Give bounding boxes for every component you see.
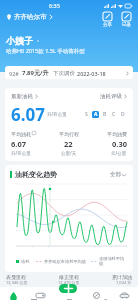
staticText: 油耗评级: [100, 93, 122, 100]
staticText: 油耗变化趋势: [15, 170, 57, 179]
staticText: 哈弗H6 2015款 1.5L 手动菁朴型: [6, 47, 85, 55]
staticText: 下次调价: [53, 70, 75, 77]
button[interactable]: A: [92, 111, 99, 118]
button[interactable]: D: [119, 111, 126, 118]
staticText: 平均行程: [59, 131, 79, 137]
staticText: 小姨子: [6, 35, 33, 46]
staticText: 记录: [122, 22, 131, 28]
staticText: A: [94, 111, 98, 118]
staticText: 平均油耗: [11, 131, 31, 137]
staticText: 分享: [103, 22, 112, 28]
staticText: 修正里程: [59, 274, 79, 280]
staticText: D: [121, 111, 125, 118]
staticText: 平均油费: [107, 131, 127, 137]
staticText: 油耗: [21, 259, 30, 264]
staticText: 6:35: [49, 2, 60, 9]
staticText: 全国油耗平均值: [99, 256, 128, 266]
button[interactable]: S: [83, 111, 90, 118]
button[interactable]: B: [101, 111, 108, 118]
staticText: 元/公里: [111, 150, 127, 156]
staticText: 表显里程: [6, 274, 26, 280]
button[interactable]: 发现: [82, 291, 110, 300]
button[interactable]: Share: [102, 11, 113, 29]
button[interactable]: 费用: [27, 291, 54, 300]
staticText: S: [85, 111, 88, 118]
staticText: 齐齐哈尔市: [14, 13, 47, 21]
staticText: 12,470 公里: [58, 280, 80, 285]
staticText: 公里/天: [61, 150, 77, 156]
staticText: 92#: [9, 70, 19, 77]
staticText: C: [112, 111, 116, 118]
staticText: B: [103, 111, 107, 118]
staticText: 累计加油: [112, 274, 132, 280]
staticText: 2022-03-18: [77, 70, 106, 77]
staticText: 齐齐哈尔市油耗平均值: [44, 259, 86, 264]
button[interactable]: 全部: [108, 169, 128, 180]
staticText: 升/百公里: [11, 150, 31, 156]
staticText: 22: [64, 139, 73, 149]
staticText: 6.07: [11, 103, 45, 126]
button[interactable]: C: [110, 111, 117, 118]
staticText: 全部: [110, 171, 121, 178]
button[interactable]: 我的: [110, 291, 138, 300]
button[interactable]: 油耗: [0, 291, 27, 300]
button[interactable]: Records: [121, 11, 132, 29]
button[interactable]: 92#: [5, 66, 133, 79]
button[interactable]: 齐齐哈尔市: [5, 11, 54, 23]
button[interactable]: 最新油耗: [5, 88, 133, 161]
staticText: 1,024 升: [116, 280, 132, 285]
staticText: 6.07: [11, 139, 26, 149]
staticText: 升/百公里: [47, 111, 67, 117]
button[interactable]: 记一笔: [59, 284, 77, 293]
staticText: 0.30: [112, 139, 127, 149]
staticText: 最新油耗: [11, 93, 33, 100]
staticText: 7.89元/升: [22, 69, 49, 77]
staticText: 12,345 公里: [6, 280, 28, 285]
